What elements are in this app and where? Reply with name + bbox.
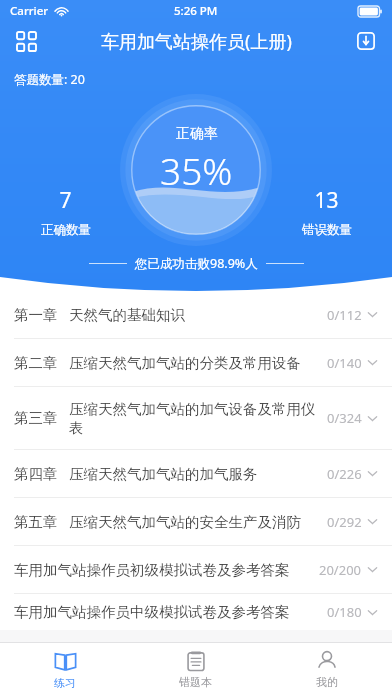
staticText: 答题数量: 20: [14, 71, 85, 88]
button[interactable]: 练习: [0, 643, 130, 696]
button[interactable]: 第四章: [0, 450, 392, 498]
staticText: 0/292: [327, 513, 362, 531]
button[interactable]: Download: [348, 23, 384, 59]
button[interactable]: 车用加气站操作员中级模拟试卷及参考答案: [0, 594, 392, 630]
staticText: 压缩天然气加气站的分类及常用设备: [69, 354, 321, 372]
staticText: 练习: [54, 676, 76, 690]
staticText: 第一章: [14, 306, 58, 324]
staticText: 13: [314, 186, 339, 215]
button[interactable]: 第一章: [0, 291, 392, 339]
staticText: 正确数量: [41, 222, 91, 238]
button[interactable]: 车用加气站操作员初级模拟试卷及参考答案: [0, 546, 392, 594]
staticText: 正确率: [176, 125, 218, 143]
button[interactable]: 第五章: [0, 498, 392, 546]
staticText: 我的: [316, 675, 338, 689]
staticText: 0/140: [327, 354, 362, 372]
staticText: 0/324: [327, 409, 362, 427]
button[interactable]: 第三章: [0, 387, 392, 450]
staticText: 第五章: [14, 513, 58, 531]
staticText: 压缩天然气加气站的加气服务: [69, 465, 321, 483]
staticText: 第二章: [14, 354, 58, 372]
button[interactable]: 第二章: [0, 339, 392, 387]
staticText: 35%: [160, 145, 233, 195]
staticText: 5:26 PM: [174, 3, 218, 19]
button[interactable]: Categories: [8, 23, 44, 59]
staticText: 压缩天然气加气站的安全生产及消防: [69, 513, 321, 531]
staticText: 您已成功击败98.9%人: [135, 255, 258, 272]
staticText: 车用加气站操作员(上册): [101, 29, 292, 54]
staticText: Carrier: [10, 3, 49, 19]
staticText: 0/226: [327, 465, 362, 483]
staticText: 第四章: [14, 465, 58, 483]
staticText: 第三章: [14, 409, 58, 427]
staticText: 天然气的基础知识: [69, 306, 321, 324]
staticText: 0/180: [327, 603, 362, 621]
staticText: 0/112: [327, 306, 362, 324]
button[interactable]: 我的: [261, 643, 392, 696]
staticText: 错题本: [179, 675, 212, 689]
staticText: 7: [59, 186, 72, 215]
staticText: 车用加气站操作员初级模拟试卷及参考答案: [14, 561, 313, 579]
staticText: 压缩天然气加气站的加气设备及常用仪表: [69, 400, 321, 437]
staticText: 车用加气站操作员中级模拟试卷及参考答案: [14, 603, 321, 621]
staticText: 错误数量: [302, 222, 352, 238]
button[interactable]: 错题本: [130, 643, 261, 696]
staticText: 20/200: [319, 561, 362, 579]
